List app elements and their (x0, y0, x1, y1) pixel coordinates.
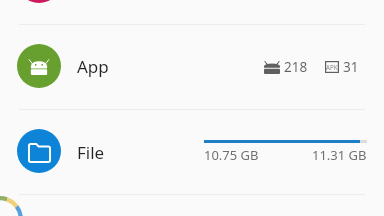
staticText: 31 (343, 58, 359, 76)
staticText: APK (326, 63, 338, 71)
staticText: App (77, 55, 109, 78)
staticText: File (77, 141, 105, 164)
staticText: 11.31 GB (312, 146, 367, 164)
button[interactable]: App (0, 24, 384, 108)
staticText: 218 (284, 58, 308, 76)
staticText: 10.75 GB (204, 146, 259, 164)
button[interactable]: File (0, 109, 384, 193)
other: APK files (325, 61, 339, 73)
other: Installed apps (264, 61, 280, 74)
